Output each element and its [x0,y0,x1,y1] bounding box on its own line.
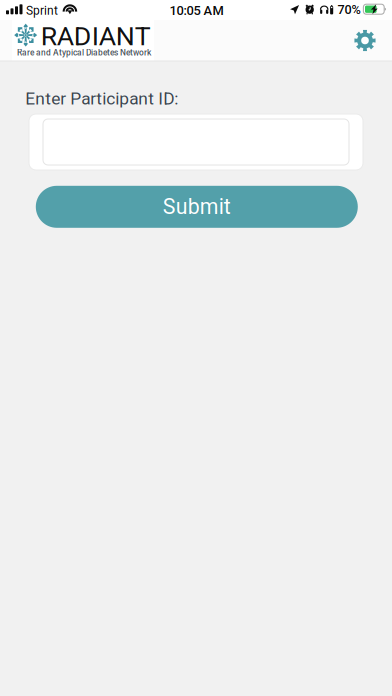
staticText: 70% [337,2,360,17]
staticText: Rare and Atypical Diabetes Network [17,48,151,58]
staticText: Enter Participant ID: [25,88,178,109]
staticText: 10:05 AM [170,3,224,18]
button[interactable]: Settings [344,20,386,61]
button[interactable]: Submit [36,186,358,228]
staticText: Submit [163,194,231,219]
staticText: Sprint [26,4,58,18]
staticText: RADIANT [41,21,151,52]
